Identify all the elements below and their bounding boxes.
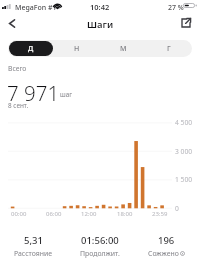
- button[interactable]: Д: [9, 41, 53, 56]
- staticText: 00:00: [11, 210, 27, 218]
- button[interactable]: Г: [147, 41, 191, 56]
- button[interactable]: М: [101, 41, 145, 56]
- staticText: 3 000: [175, 147, 193, 156]
- button[interactable]: Share: [175, 12, 196, 33]
- staticText: 23:59: [152, 210, 168, 218]
- staticText: 0: [175, 204, 179, 213]
- staticText: Сожжено: [148, 249, 179, 258]
- button[interactable]: Back: [2, 13, 22, 33]
- staticText: 1 500: [175, 175, 193, 184]
- staticText: 01:56:00: [81, 234, 119, 247]
- staticText: 10:42: [90, 2, 110, 12]
- button[interactable]: 196: [133, 234, 200, 258]
- staticText: 27 %: [168, 3, 184, 13]
- staticText: Расстояние: [14, 249, 52, 258]
- staticText: 18:00: [117, 210, 133, 218]
- staticText: Продолжит.: [80, 249, 120, 258]
- staticText: шаг: [60, 90, 73, 99]
- staticText: Шаги: [87, 18, 114, 31]
- staticText: Н: [74, 44, 80, 54]
- staticText: 196: [158, 234, 175, 247]
- staticText: 7 971: [7, 79, 60, 107]
- staticText: М: [120, 44, 127, 54]
- button[interactable]: Н: [55, 41, 99, 56]
- button[interactable]: 01:56:00: [66, 234, 133, 258]
- staticText: 8 сент.: [8, 101, 29, 110]
- staticText: Д: [28, 44, 34, 54]
- staticText: 4 500: [175, 118, 193, 127]
- staticText: 06:00: [46, 210, 62, 218]
- staticText: Г: [167, 44, 171, 54]
- staticText: Всего: [8, 64, 27, 73]
- staticText: 12:00: [81, 210, 97, 218]
- staticText: MegaFon #1: [15, 3, 57, 13]
- button[interactable]: 5,31: [0, 234, 66, 258]
- staticText: 5,31: [24, 234, 43, 247]
